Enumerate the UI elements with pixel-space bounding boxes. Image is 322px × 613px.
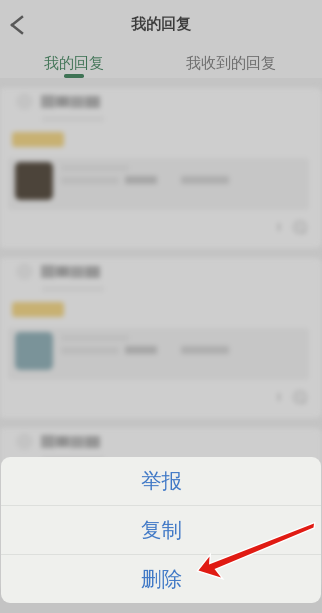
button[interactable]	[0, 428, 322, 588]
staticText: 我的回复	[131, 15, 191, 34]
button[interactable]	[0, 88, 322, 248]
staticText: 复制	[141, 517, 182, 543]
button[interactable]	[0, 258, 322, 418]
button[interactable]: 我收到的回复	[180, 49, 281, 78]
button[interactable]: 复制	[1, 506, 321, 554]
button[interactable]: 删除	[1, 555, 321, 603]
staticText: 我收到的回复	[186, 54, 276, 73]
button[interactable]: Back	[2, 10, 32, 40]
staticText: 举报	[141, 468, 182, 494]
button[interactable]: 举报	[1, 457, 321, 505]
button[interactable]: 我的回复	[34, 49, 114, 78]
staticText: 删除	[141, 566, 182, 592]
staticText: 我的回复	[44, 54, 104, 73]
